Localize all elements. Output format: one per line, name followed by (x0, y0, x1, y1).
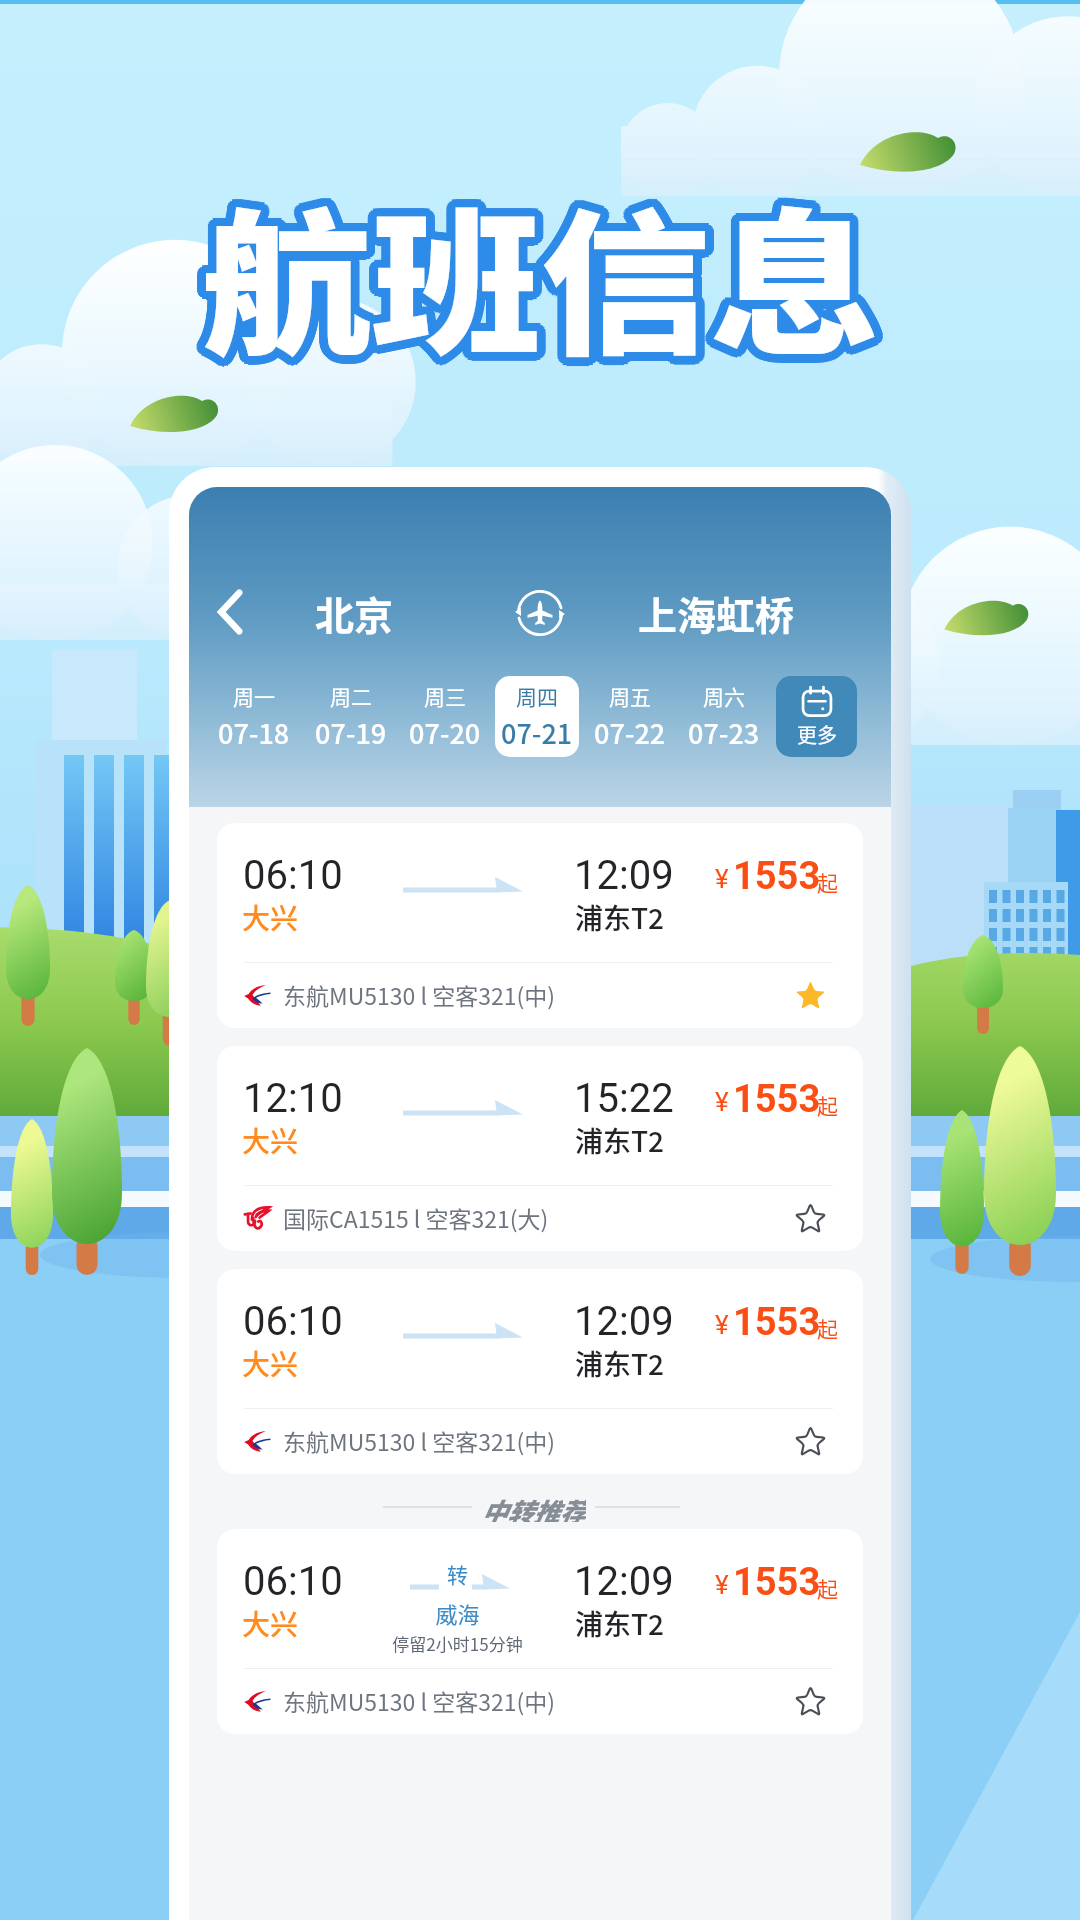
staticText: 航班信息 (206, 156, 884, 382)
staticText: 起 (817, 867, 838, 897)
staticText: 起 (817, 1313, 838, 1343)
staticText: 12:10 (243, 1075, 343, 1122)
staticText: 1553 (733, 854, 821, 899)
button[interactable]: 06:10 (217, 1529, 863, 1734)
staticText: ¥ (715, 1087, 729, 1117)
staticText: 航班信息 (209, 165, 887, 391)
staticText: 北京 (315, 585, 394, 641)
staticText: 航班信息 (196, 154, 874, 379)
button[interactable]: Favorite (787, 972, 833, 1018)
staticText: 航班信息 (210, 164, 888, 389)
staticText: 航班信息 (198, 156, 876, 382)
staticText: 航班信息 (211, 162, 889, 387)
staticText: 浦东T2 (575, 897, 665, 938)
staticText: 航班信息 (207, 162, 885, 387)
staticText: 航班信息 (197, 158, 875, 383)
staticText: 浦东T2 (575, 1603, 665, 1644)
button[interactable]: 周三 (403, 676, 487, 757)
staticText: 更多 (797, 720, 837, 749)
staticText: 航班信息 (194, 156, 872, 382)
staticText: 东航MU5130 l 空客321(中) (283, 978, 555, 1011)
button[interactable]: 周一 (212, 676, 296, 757)
button[interactable]: 周五 (588, 676, 672, 757)
button[interactable]: Favorite (787, 1678, 833, 1724)
staticText: 07-22 (594, 713, 666, 752)
staticText: 航班信息 (208, 154, 886, 379)
staticText: 航班信息 (211, 160, 889, 385)
staticText: 东航MU5130 l 空客321(中) (283, 1424, 555, 1457)
staticText: 航班信息 (196, 166, 874, 392)
staticText: 航班信息 (200, 168, 878, 393)
staticText: 中转推荐 (481, 1492, 586, 1522)
staticText: 1553 (733, 1077, 821, 1122)
button[interactable]: Favorite (787, 1195, 833, 1241)
staticText: 航班信息 (200, 164, 878, 390)
staticText: 航班信息 (202, 155, 880, 381)
staticText: 航班信息 (193, 160, 871, 385)
staticText: 12:09 (574, 1558, 674, 1605)
staticText: 航班信息 (207, 160, 885, 385)
button[interactable]: 06:10 (217, 1269, 863, 1474)
button[interactable]: 周四 (495, 676, 579, 757)
staticText: 07-21 (501, 713, 573, 752)
staticText: 航班信息 (207, 158, 885, 383)
button[interactable]: Swap airports (511, 584, 569, 642)
staticText: ¥ (715, 864, 729, 894)
staticText: 航班信息 (204, 164, 882, 390)
staticText: 航班信息 (198, 164, 876, 389)
staticText: 航班信息 (202, 164, 880, 390)
staticText: ¥ (715, 1570, 729, 1600)
staticText: 浦东T2 (575, 1120, 665, 1161)
button[interactable]: 更多 (776, 676, 857, 757)
staticText: 1553 (733, 1300, 821, 1345)
staticText: 06:10 (243, 1298, 343, 1345)
staticText: 12:09 (574, 852, 674, 899)
staticText: 航班信息 (200, 155, 878, 381)
staticText: 07-18 (218, 713, 290, 752)
button[interactable]: Favorite (787, 1418, 833, 1464)
staticText: 航班信息 (193, 158, 871, 383)
staticText: 周一 (233, 681, 275, 711)
staticText: 1553 (733, 1560, 821, 1605)
button[interactable]: 12:10 (217, 1046, 863, 1251)
staticText: 15:22 (574, 1075, 674, 1122)
staticText: 起 (817, 1090, 838, 1120)
staticText: 东航MU5130 l 空客321(中) (283, 1684, 555, 1717)
staticText: 威海 (435, 1597, 480, 1629)
staticText: 航班信息 (206, 152, 884, 377)
button[interactable]: 06:10 (217, 823, 863, 1028)
staticText: 上海虹桥 (638, 585, 795, 641)
button[interactable]: 周二 (309, 676, 393, 757)
staticText: 航班信息 (198, 168, 876, 393)
staticText: 航班信息 (197, 160, 875, 385)
button[interactable]: 周六 (682, 676, 766, 757)
staticText: 航班信息 (195, 165, 873, 391)
staticText: 06:10 (243, 852, 343, 899)
staticText: 周五 (609, 681, 651, 711)
staticText: 周六 (703, 681, 745, 711)
staticText: 航班信息 (194, 164, 872, 389)
staticText: 航班信息 (208, 166, 886, 392)
staticText: 航班信息 (202, 169, 880, 394)
staticText: 07-20 (409, 713, 481, 752)
staticText: 周四 (516, 681, 558, 711)
staticText: 大兴 (242, 1603, 299, 1644)
staticText: 航班信息 (206, 164, 884, 389)
staticText: 大兴 (242, 1343, 299, 1384)
staticText: 航班信息 (198, 152, 876, 377)
staticText: 航班信息 (202, 152, 880, 377)
staticText: 航班信息 (210, 156, 888, 382)
staticText: 航班信息 (206, 168, 884, 393)
staticText: 起 (817, 1573, 838, 1603)
staticText: 航班信息 (211, 158, 889, 383)
staticText: 周三 (424, 681, 466, 711)
staticText: 停留2小时15分钟 (392, 1631, 523, 1656)
staticText: 国际CA1515 l 空客321(大) (283, 1201, 549, 1234)
staticText: 航班信息 (197, 162, 875, 387)
staticText: 航班信息 (200, 152, 878, 377)
staticText: 07-19 (315, 713, 387, 752)
staticText: 航班信息 (209, 155, 887, 380)
staticText: 周二 (330, 681, 372, 711)
staticText: 大兴 (242, 897, 299, 938)
button[interactable]: Back (195, 582, 265, 642)
